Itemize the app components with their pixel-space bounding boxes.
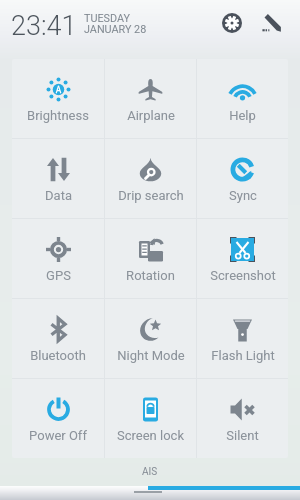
staticText: Power Off (29, 428, 87, 443)
staticText: Screen lock (117, 428, 184, 443)
button[interactable]: Bluetooth (12, 299, 104, 378)
staticText: Night Mode (117, 348, 185, 363)
staticText: AIS (142, 466, 158, 478)
staticText: Airplane (127, 108, 175, 123)
staticText: GPS (46, 268, 71, 283)
button[interactable]: Power Off (12, 379, 104, 458)
staticText: Help (229, 108, 256, 123)
button[interactable]: Flash Light (197, 299, 288, 378)
button[interactable]: Brightness (12, 59, 104, 138)
staticText: Screenshot (210, 268, 276, 283)
staticText: Bluetooth (30, 348, 86, 363)
button[interactable]: Settings (216, 7, 247, 38)
button[interactable]: Help (197, 59, 288, 138)
staticText: Brightness (27, 108, 89, 123)
staticText: Data (45, 188, 72, 203)
button[interactable]: Drip search (105, 139, 196, 218)
button[interactable]: Screen lock (105, 379, 196, 458)
button[interactable]: Airplane (105, 59, 196, 138)
staticText: 23:41 (11, 10, 77, 42)
button[interactable]: Data (12, 139, 104, 218)
button[interactable]: Silent (197, 379, 288, 458)
button[interactable]: Edit (257, 7, 288, 38)
staticText: JANUARY 28 (84, 23, 147, 36)
button[interactable]: Night Mode (105, 299, 196, 378)
staticText: Rotation (126, 268, 175, 283)
staticText: Silent (226, 428, 259, 443)
staticText: Drip search (118, 188, 184, 203)
button[interactable]: Screenshot (197, 219, 288, 298)
button[interactable]: GPS (12, 219, 104, 298)
button[interactable]: Sync (197, 139, 288, 218)
staticText: TUESDAY (84, 12, 130, 25)
staticText: Sync (229, 188, 257, 203)
staticText: Flash Light (211, 348, 275, 363)
button[interactable]: Rotation (105, 219, 196, 298)
